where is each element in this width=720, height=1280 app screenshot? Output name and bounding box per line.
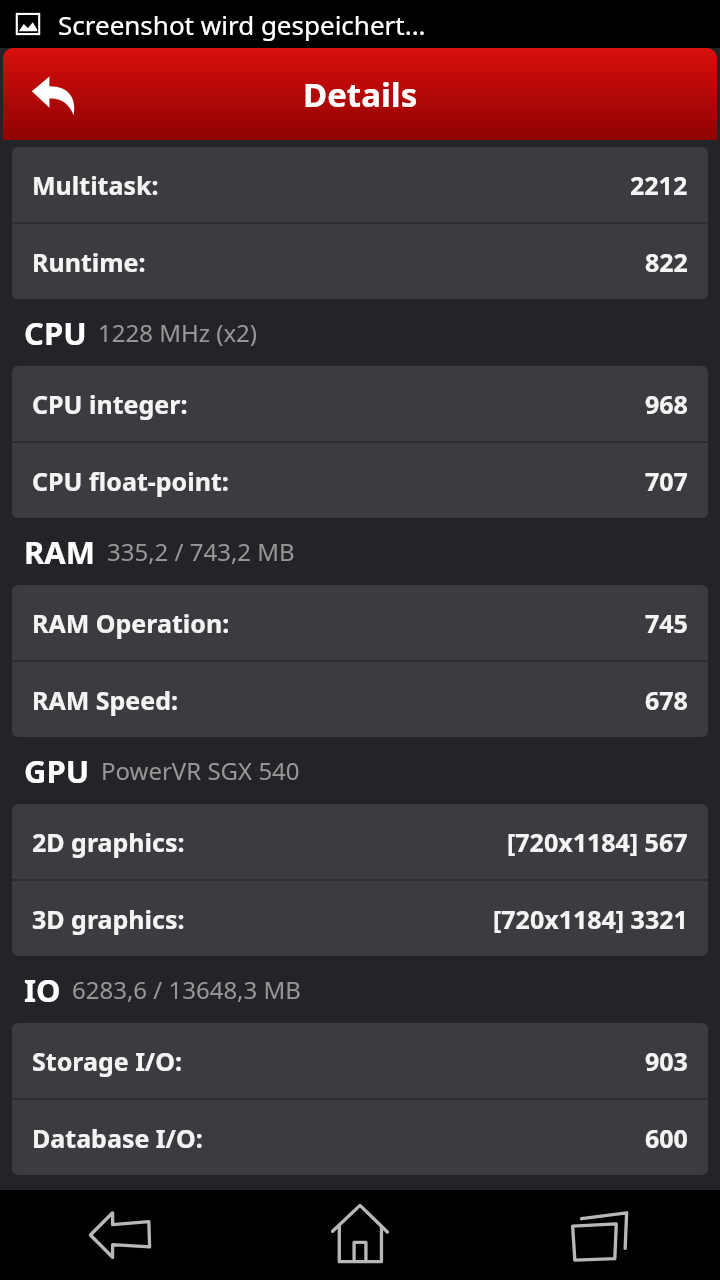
button[interactable]: Storage I/O: [12,1023,708,1098]
staticText: PowerVR SGX 540 [101,754,300,787]
button[interactable]: Database I/O: [12,1100,708,1175]
staticText: Details [303,72,418,117]
staticText: Database I/O: [32,1121,203,1155]
staticText: 6283,6 / 13648,3 MB [72,973,301,1006]
staticText: 600 [645,1121,688,1155]
staticText: RAM Speed: [32,683,179,717]
button[interactable]: Home [240,1190,480,1280]
staticText: RAM Operation: [32,606,230,640]
staticText: CPU [24,312,87,354]
staticText: [720x1184] 3321 [493,902,688,936]
staticText: IO [24,969,61,1011]
staticText: 822 [645,245,688,279]
staticText: 903 [645,1044,688,1078]
button[interactable]: RAM Operation: [12,585,708,660]
button[interactable]: Back [21,61,87,127]
staticText: 678 [645,683,688,717]
button[interactable]: Multitask: [12,147,708,222]
button[interactable]: CPU float-point: [12,443,708,518]
staticText: 707 [645,464,688,498]
staticText: 968 [645,387,688,421]
staticText: 1228 MHz (x2) [98,316,258,349]
staticText: Runtime: [32,245,146,279]
button[interactable]: Recent apps [480,1190,720,1280]
button[interactable]: RAM Speed: [12,662,708,737]
staticText: Storage I/O: [32,1044,183,1078]
button[interactable]: 2D graphics: [12,804,708,879]
staticText: GPU [24,750,90,792]
staticText: CPU float-point: [32,464,229,498]
button[interactable]: Runtime: [12,224,708,299]
staticText: 2D graphics: [32,825,185,859]
staticText: RAM [24,531,96,573]
staticText: [720x1184] 567 [507,825,688,859]
staticText: 3D graphics: [32,902,185,936]
staticText: CPU integer: [32,387,188,421]
staticText: Multitask: [32,168,159,202]
button[interactable]: 3D graphics: [12,881,708,956]
staticText: 335,2 / 743,2 MB [107,535,295,568]
staticText: Screenshot wird gespeichert... [58,7,426,42]
staticText: 2212 [630,168,688,202]
button[interactable]: CPU integer: [12,366,708,441]
button[interactable]: Back [0,1190,240,1280]
staticText: 745 [645,606,688,640]
